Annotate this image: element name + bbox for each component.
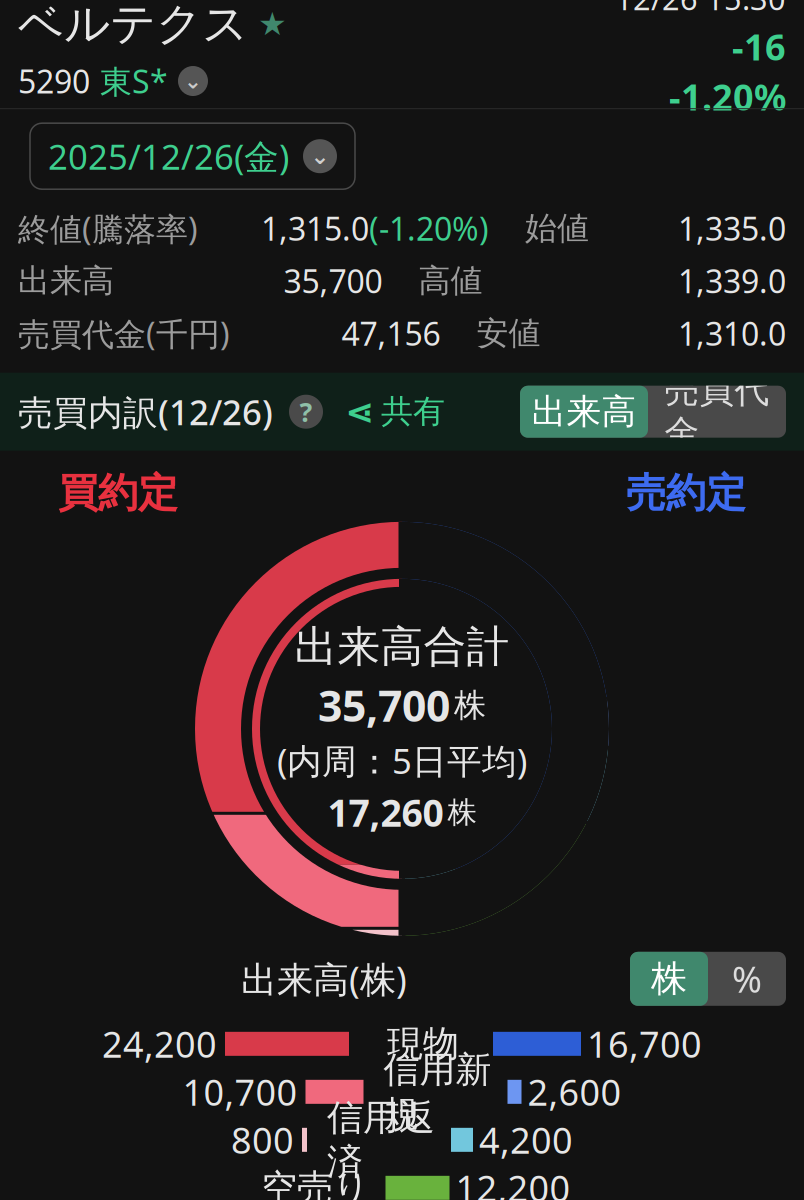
staticText: 出来高(株) — [241, 955, 407, 1003]
staticText: ? — [299, 394, 312, 429]
staticText: 1,315.0 — [261, 207, 369, 250]
staticText: 1,310.0 — [678, 312, 786, 355]
button[interactable]: % — [708, 952, 786, 1006]
staticText: 12,200 — [455, 1164, 570, 1200]
button[interactable]: 売買代金 — [648, 386, 786, 438]
staticText: 2,600 — [527, 1068, 621, 1116]
staticText: 空売り — [261, 1166, 370, 1200]
staticText: -1.20% — [669, 72, 786, 120]
staticText: 1,335.0 — [678, 207, 786, 250]
button[interactable]: ヘルプ — [289, 395, 323, 429]
button[interactable]: 株 — [630, 952, 708, 1006]
staticText: 売買内訳(12/26) — [18, 389, 273, 435]
staticText: (-1.20%) — [369, 207, 489, 250]
staticText: 16,700 — [587, 1020, 702, 1068]
button[interactable]: 2025/12/26(金) — [30, 123, 355, 189]
staticText: 始値 — [525, 209, 589, 248]
staticText: 信用返済 — [327, 1096, 435, 1184]
staticText: 株 — [447, 794, 476, 830]
staticText: 1,339.0 — [678, 260, 786, 302]
staticText: 35,700 — [318, 677, 450, 734]
staticText: 47,156 — [341, 312, 440, 355]
staticText: 24,200 — [102, 1020, 217, 1068]
staticText: ベルテクス — [18, 0, 248, 52]
staticText: 17,260 — [327, 788, 443, 837]
staticText: 東S* — [100, 60, 168, 102]
staticText: 4,200 — [479, 1116, 573, 1164]
staticText: 信用新規 — [383, 1048, 491, 1136]
staticText: (内周：5日平均) — [277, 738, 527, 784]
staticText: 出来高 — [531, 390, 636, 433]
staticText: 35,700 — [283, 260, 382, 302]
button[interactable]: ⋖ — [345, 392, 445, 431]
staticText: ⌄ — [184, 69, 202, 93]
staticText: 出来高合計 — [294, 620, 509, 673]
staticText: % — [732, 955, 762, 1003]
staticText: 買約定 — [58, 469, 178, 518]
staticText: 現物 — [387, 1022, 459, 1066]
staticText: 5290 — [18, 60, 90, 102]
staticText: 800 — [231, 1116, 294, 1164]
staticText: 株 — [651, 957, 687, 1001]
staticText: ⌄ — [310, 143, 329, 169]
staticText: 出来高 — [18, 261, 114, 301]
staticText: ★ — [258, 6, 287, 42]
staticText: 売買代金 — [664, 369, 769, 454]
staticText: 終値(騰落率) — [18, 207, 198, 250]
staticText: 10,700 — [182, 1068, 297, 1116]
staticText: ⋖ — [345, 392, 374, 431]
staticText: 売約定 — [626, 469, 746, 518]
staticText: 高値 — [418, 261, 482, 301]
staticText: -16 — [732, 23, 786, 70]
button[interactable]: 出来高 — [520, 386, 648, 438]
staticText: 安値 — [476, 314, 540, 353]
staticText: 12/26 15:30 — [615, 0, 786, 19]
staticText: 売買代金(千円) — [18, 312, 230, 355]
button[interactable]: 市場を選択 — [178, 66, 208, 96]
staticText: 株 — [454, 686, 486, 725]
staticText: 2025/12/26(金) — [48, 133, 289, 179]
staticText: 共有 — [381, 392, 445, 431]
